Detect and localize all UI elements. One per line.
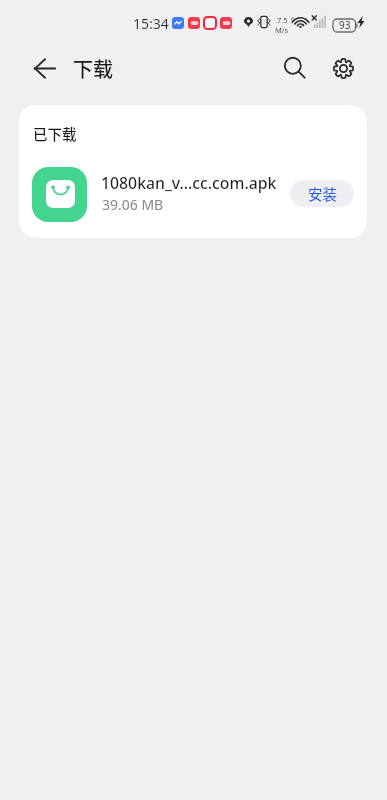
staticText: 7.5 [277, 15, 288, 25]
staticText: 已下载 [33, 123, 77, 144]
staticText: 1080kan_v…cc.com.apk [101, 172, 277, 194]
staticText: 安装 [308, 183, 337, 204]
staticText: 下载 [73, 54, 113, 83]
button[interactable]: Back [22, 46, 66, 90]
staticText: 39.06 MB [102, 195, 164, 214]
button[interactable]: 安装 [290, 180, 354, 207]
button[interactable]: Settings [321, 46, 365, 90]
button[interactable]: Search [273, 46, 317, 90]
staticText: 6 [291, 15, 295, 23]
staticText: 15:34 [133, 14, 169, 33]
staticText: M/s [275, 25, 289, 35]
staticText: 93 [339, 18, 351, 32]
